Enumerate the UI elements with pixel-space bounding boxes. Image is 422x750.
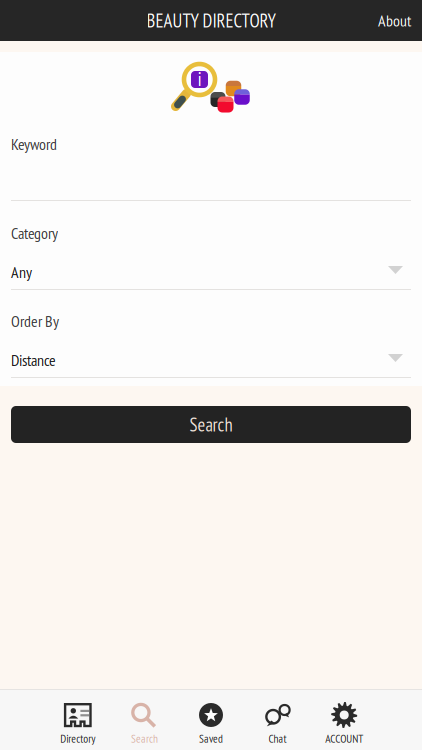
button[interactable]: About <box>365 0 422 41</box>
button[interactable]: Search <box>111 690 178 750</box>
staticText: Search <box>189 412 232 437</box>
staticText: BEAUTY DIRECTORY <box>146 8 275 33</box>
button[interactable]: Saved <box>178 690 244 750</box>
staticText: Category <box>11 223 58 243</box>
staticText: i <box>197 66 201 91</box>
staticText: Search <box>131 731 158 746</box>
staticText: Saved <box>199 731 223 746</box>
button[interactable]: Search <box>11 406 411 443</box>
staticText: Any <box>11 262 32 282</box>
button[interactable]: ACCOUNT <box>311 690 377 750</box>
staticText: ACCOUNT <box>325 731 363 746</box>
staticText: Order By <box>11 311 59 331</box>
staticText: Directory <box>60 731 95 746</box>
button[interactable]: Directory <box>44 690 111 750</box>
staticText: Distance <box>11 350 56 370</box>
staticText: Keyword <box>11 134 57 154</box>
staticText: Chat <box>269 731 287 746</box>
staticText: About <box>378 10 411 31</box>
button[interactable]: Chat <box>244 690 311 750</box>
